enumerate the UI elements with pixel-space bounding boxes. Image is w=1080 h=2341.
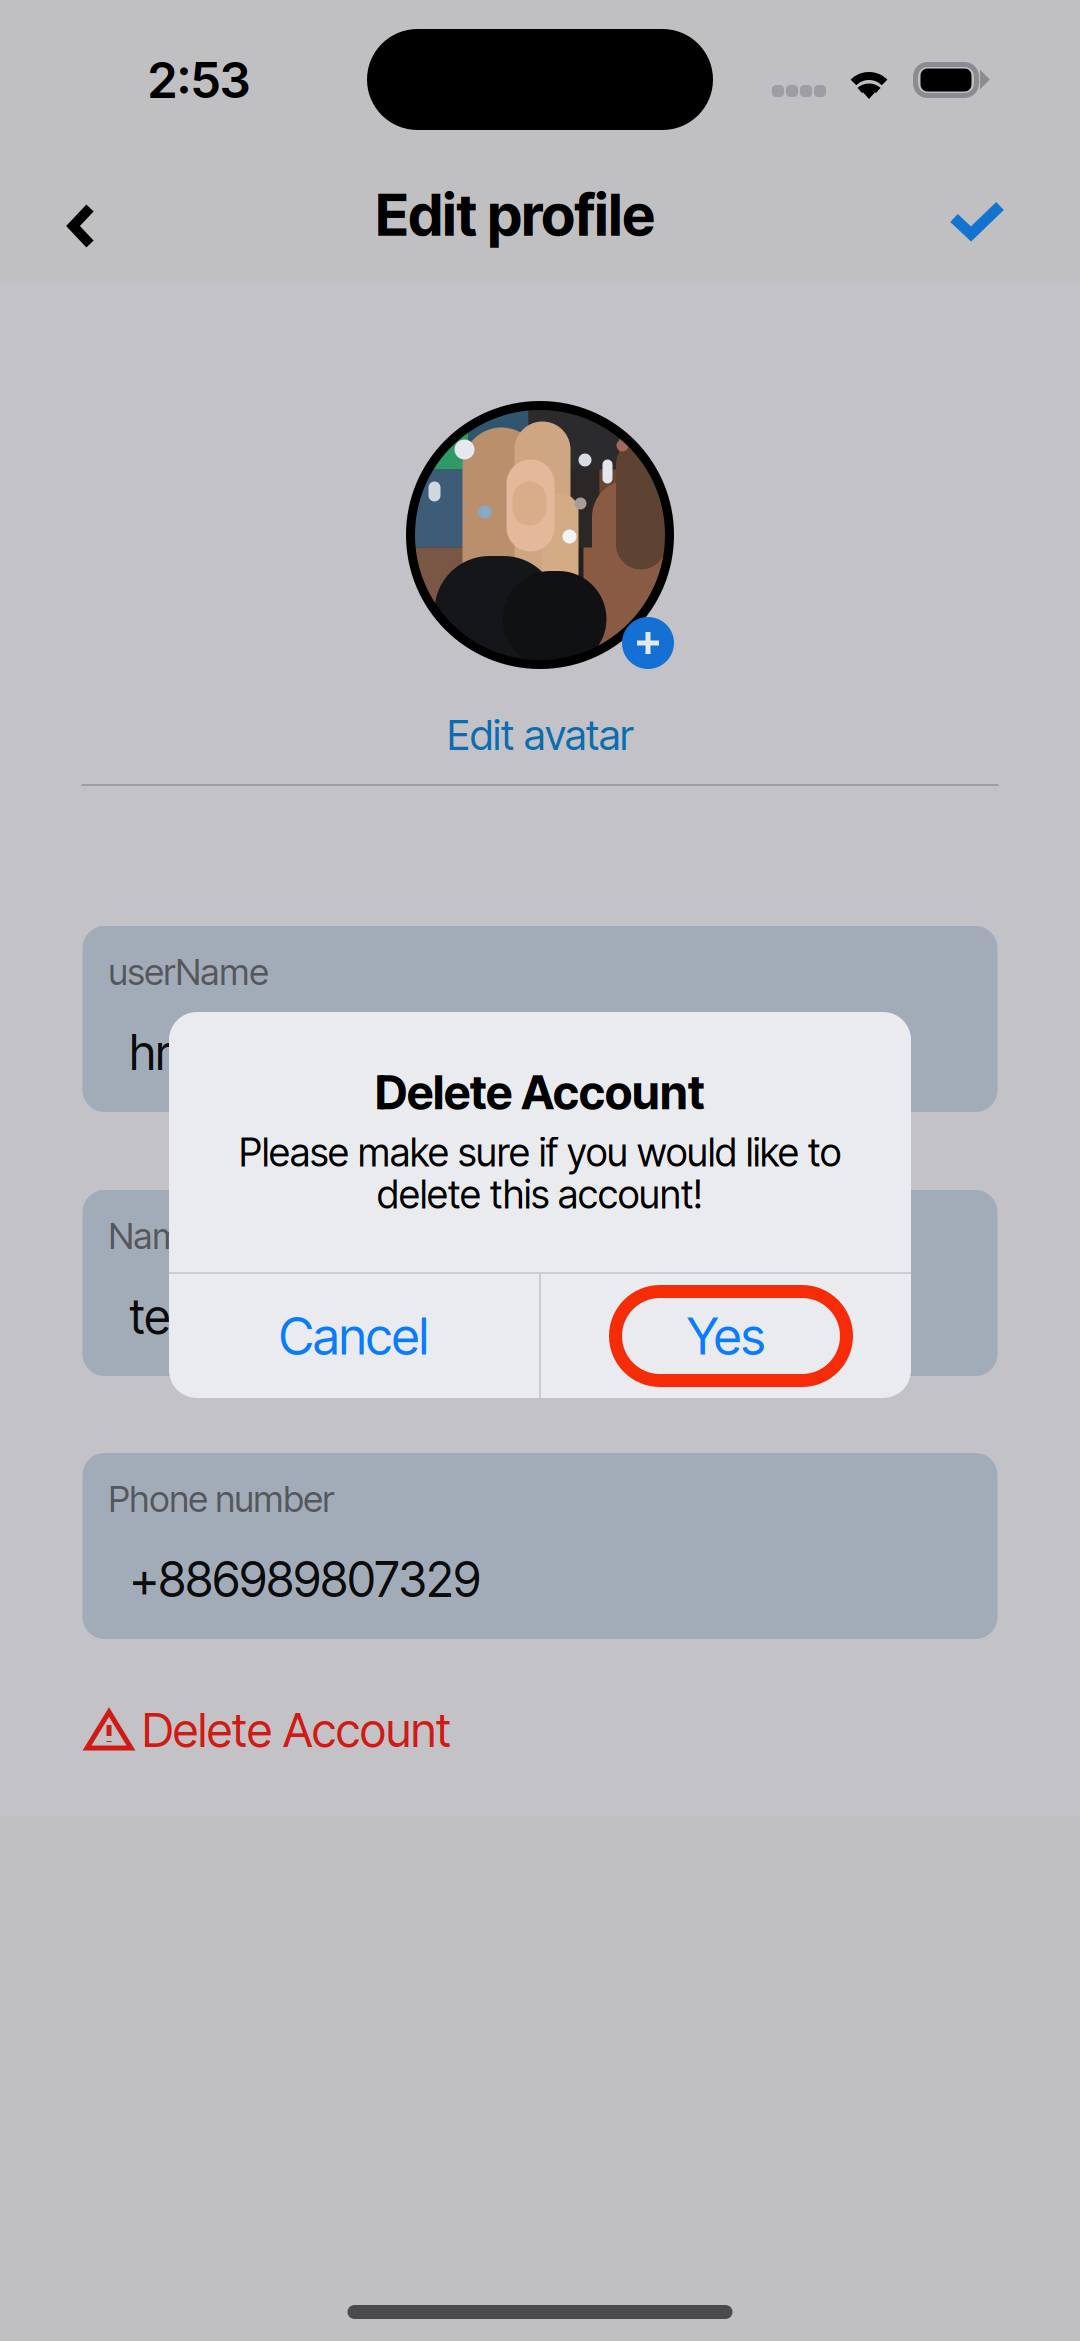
staticText: Yes bbox=[687, 1305, 765, 1367]
button[interactable]: Delete Account bbox=[0, 1690, 1080, 1770]
staticText: Delete Account bbox=[375, 1064, 705, 1120]
staticText: Cancel bbox=[279, 1305, 429, 1367]
button[interactable]: Save changes bbox=[925, 160, 1080, 270]
button[interactable]: Back bbox=[0, 160, 155, 270]
staticText: Delete Account bbox=[142, 1702, 451, 1758]
staticText: Phone number bbox=[108, 1477, 334, 1521]
button[interactable]: Change avatar photo bbox=[406, 401, 674, 669]
staticText: Edit avatar bbox=[447, 710, 633, 760]
staticText: Edit profile bbox=[375, 180, 654, 250]
staticText: +886989807329 bbox=[129, 1551, 480, 1609]
staticText: Please make sure if you would like to bbox=[239, 1129, 841, 1176]
staticText: 2:53 bbox=[148, 50, 250, 110]
staticText: userName bbox=[108, 950, 268, 994]
button[interactable]: Yes bbox=[541, 1274, 911, 1398]
staticText: delete this account! bbox=[377, 1171, 703, 1218]
button[interactable]: Cancel bbox=[169, 1274, 539, 1398]
staticText: hristina bbox=[129, 1024, 278, 1082]
staticText: test bbox=[129, 1288, 208, 1346]
staticText: Name bbox=[108, 1214, 201, 1258]
button[interactable]: Edit avatar bbox=[370, 702, 710, 768]
